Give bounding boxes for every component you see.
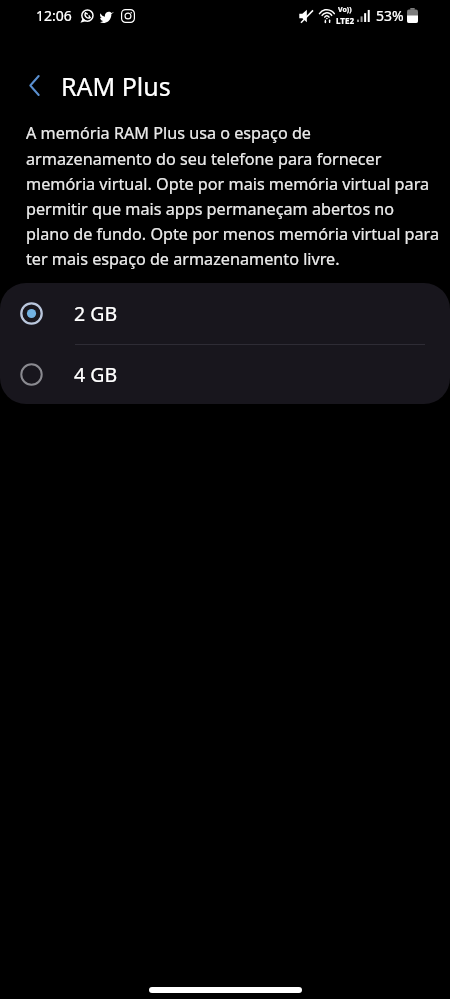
staticText: Vo)) — [338, 5, 352, 15]
staticText: 53% — [376, 6, 404, 25]
staticText: 2 GB — [74, 300, 118, 327]
staticText: LTE2 — [336, 15, 354, 26]
button[interactable]: Back — [17, 68, 51, 102]
button[interactable]: 4 GB — [0, 345, 450, 404]
button[interactable]: 2 GB — [0, 283, 450, 344]
staticText: RAM Plus — [61, 69, 171, 103]
staticText: A memória RAM Plus usa o espaço de armaz… — [26, 122, 440, 270]
staticText: 12:06 — [36, 6, 72, 25]
staticText: 4 GB — [74, 361, 118, 388]
